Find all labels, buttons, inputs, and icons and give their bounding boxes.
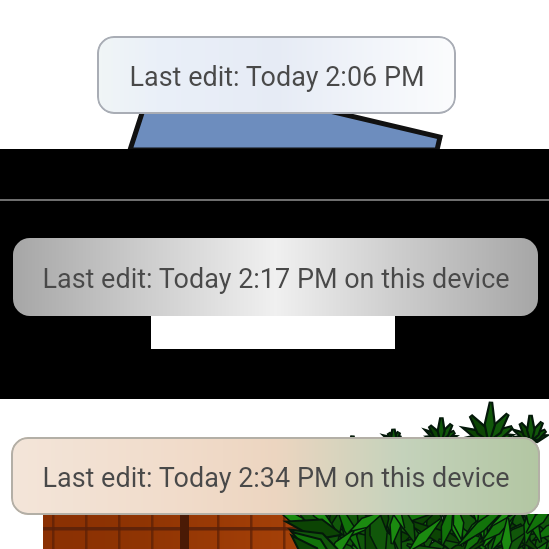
button[interactable]: Last edit: Today 2:17 PM on this device (13, 238, 538, 316)
staticText: Last edit: Today 2:34 PM on this device (42, 462, 510, 494)
staticText: Last edit: Today 2:17 PM on this device (42, 263, 510, 295)
staticText: Last edit: Today 2:06 PM (129, 61, 425, 93)
button[interactable]: Last edit: Today 2:06 PM (97, 36, 456, 114)
button[interactable]: Last edit: Today 2:34 PM on this device (11, 437, 540, 515)
